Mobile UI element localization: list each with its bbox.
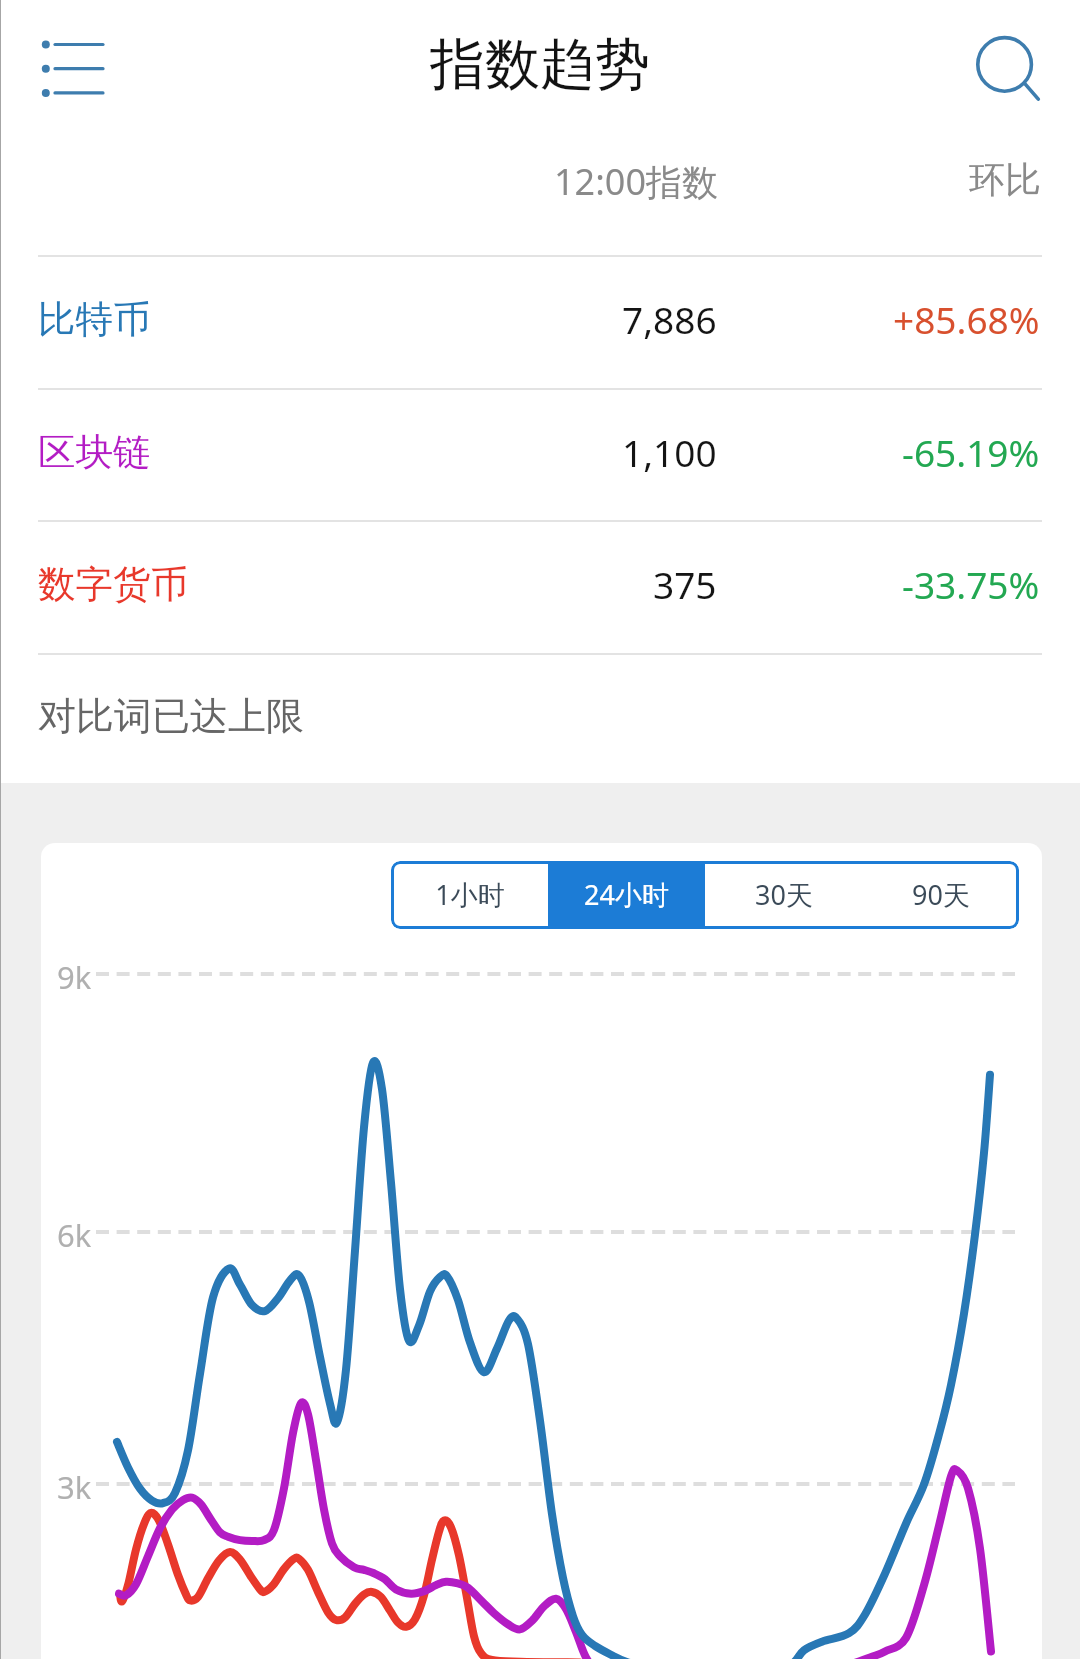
staticText: -65.19%: [902, 427, 1040, 477]
button[interactable]: 90天: [862, 861, 1019, 929]
staticText: 12:00指数: [554, 157, 719, 206]
staticText: 9k: [57, 956, 92, 998]
staticText: 区块链: [38, 429, 151, 476]
staticText: -33.75%: [902, 559, 1040, 609]
staticText: 对比词已达上限: [38, 692, 304, 740]
staticText: 24小时: [584, 876, 669, 913]
button[interactable]: Search: [956, 4, 1080, 128]
button[interactable]: 比特币: [0, 255, 1080, 388]
staticText: 比特币: [38, 296, 151, 343]
button[interactable]: Menu: [0, 6, 124, 130]
staticText: +85.68%: [893, 294, 1040, 344]
button[interactable]: 30天: [705, 861, 862, 929]
button[interactable]: 数字货币: [0, 520, 1080, 653]
staticText: 375: [653, 559, 717, 609]
staticText: 环比: [969, 157, 1041, 202]
staticText: 1,100: [622, 427, 717, 477]
staticText: 7,886: [622, 294, 717, 344]
button[interactable]: 24小时: [548, 861, 705, 929]
staticText: 6k: [57, 1214, 92, 1256]
staticText: 1小时: [435, 876, 505, 913]
button[interactable]: 1小时: [391, 861, 548, 929]
staticText: 3k: [57, 1466, 92, 1508]
staticText: 90天: [912, 876, 970, 913]
staticText: 30天: [755, 876, 813, 913]
staticText: 数字货币: [38, 561, 188, 608]
button[interactable]: 区块链: [0, 388, 1080, 521]
staticText: 指数趋势: [430, 30, 650, 99]
